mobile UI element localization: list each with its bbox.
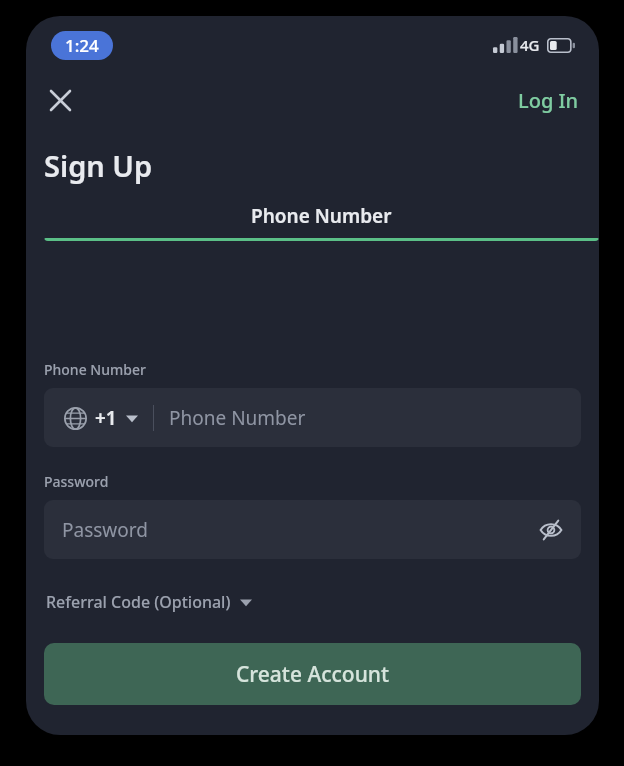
staticText: Password — [62, 517, 148, 543]
staticText: Phone Number — [251, 203, 392, 229]
button[interactable]: Close — [34, 74, 86, 126]
button[interactable]: +1 — [62, 401, 140, 435]
staticText: 4G — [520, 35, 540, 55]
staticText: Phone Number — [169, 405, 306, 431]
staticText: 1:24 — [65, 34, 99, 57]
button[interactable]: Password — [44, 500, 581, 559]
staticText: Log In — [518, 87, 579, 114]
staticText: Password — [44, 472, 109, 491]
staticText: Phone Number — [44, 360, 146, 379]
button[interactable]: Referral Code (Optional) — [44, 587, 254, 617]
button[interactable]: Phone Number — [44, 203, 599, 241]
button[interactable]: Show password — [530, 509, 572, 551]
staticText: Referral Code (Optional) — [46, 591, 231, 613]
staticText: +1 — [95, 405, 117, 431]
button[interactable]: Create Account — [44, 643, 581, 705]
staticText: Create Account — [236, 660, 390, 689]
button[interactable]: Log In — [508, 81, 589, 120]
button[interactable]: +1 — [44, 388, 581, 447]
staticText: Sign Up — [44, 146, 153, 185]
